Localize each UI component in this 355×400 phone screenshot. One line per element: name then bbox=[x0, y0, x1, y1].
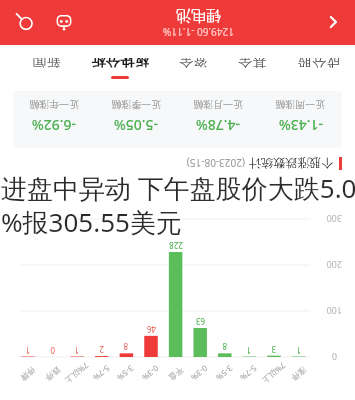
button[interactable]: 基金 bbox=[234, 56, 271, 81]
staticText: 0 bbox=[50, 345, 55, 356]
staticText: -4.78% bbox=[195, 116, 240, 135]
button[interactable]: 新闻 bbox=[28, 56, 65, 81]
staticText: 1 bbox=[74, 345, 79, 356]
staticText: 1249.60 -1.11% bbox=[163, 25, 234, 39]
staticText: 近一年涨幅 bbox=[29, 98, 79, 111]
button[interactable]: 个股涨跌数统计 bbox=[13, 156, 342, 171]
button[interactable]: Search bbox=[10, 7, 40, 37]
staticText: 近一周涨幅 bbox=[275, 98, 325, 111]
staticText: 0-3% bbox=[140, 363, 161, 384]
staticText: 5-7% bbox=[91, 363, 112, 384]
staticText: 5-7% bbox=[238, 363, 259, 384]
staticText: 7%以上 bbox=[63, 360, 91, 387]
staticText: 63 bbox=[195, 316, 205, 327]
button[interactable]: 板块分析 bbox=[87, 56, 153, 81]
staticText: %报305.55美元 bbox=[1, 204, 182, 240]
button[interactable]: Assistant bbox=[49, 7, 79, 37]
staticText: 涨停 bbox=[290, 365, 308, 383]
staticText: 0 bbox=[331, 351, 337, 363]
staticText: -1.43% bbox=[278, 116, 323, 135]
staticText: 锂电池 bbox=[176, 6, 221, 25]
button[interactable]: -1.43% bbox=[13, 91, 342, 148]
staticText: 资金 bbox=[179, 58, 208, 70]
staticText: 46 bbox=[146, 324, 156, 335]
staticText: 停牌 bbox=[19, 365, 37, 383]
staticText: 板块分析 bbox=[91, 58, 149, 70]
button[interactable]: 成分股 bbox=[293, 56, 345, 81]
staticText: 个股涨跌数统计 bbox=[249, 156, 333, 171]
staticText: 300 bbox=[326, 213, 342, 225]
button[interactable]: 资金 bbox=[175, 56, 212, 81]
staticText: 平盘 bbox=[167, 365, 185, 383]
staticText: 8 bbox=[123, 341, 128, 352]
staticText: 基金 bbox=[238, 58, 267, 70]
staticText: 近一月涨幅 bbox=[193, 98, 243, 111]
staticText: 跌停 bbox=[44, 365, 62, 383]
staticText: -6.92% bbox=[31, 116, 76, 135]
staticText: 3-5% bbox=[214, 363, 235, 384]
staticText: -5.05% bbox=[113, 116, 158, 135]
staticText: 近一季涨幅 bbox=[111, 98, 161, 111]
staticText: 2 bbox=[99, 344, 104, 355]
staticText: 8 bbox=[222, 341, 227, 352]
staticText: 7%以上 bbox=[260, 360, 288, 387]
staticText: (2023-08-15) bbox=[186, 156, 245, 170]
button[interactable]: Back bbox=[319, 8, 347, 36]
staticText: 0-3% bbox=[189, 363, 210, 384]
staticText: 1 bbox=[296, 345, 301, 356]
staticText: 成分股 bbox=[297, 58, 341, 70]
staticText: 1 bbox=[25, 345, 30, 356]
staticText: 100 bbox=[326, 305, 342, 317]
staticText: 3-5% bbox=[115, 363, 136, 384]
staticText: 228 bbox=[169, 240, 183, 251]
staticText: 3 bbox=[271, 344, 276, 355]
staticText: 新闻 bbox=[32, 58, 61, 70]
staticText: 200 bbox=[326, 259, 342, 271]
staticText: 进盘中异动 下午盘股价大跌5.0 bbox=[1, 170, 355, 206]
staticText: 1 bbox=[246, 345, 251, 356]
